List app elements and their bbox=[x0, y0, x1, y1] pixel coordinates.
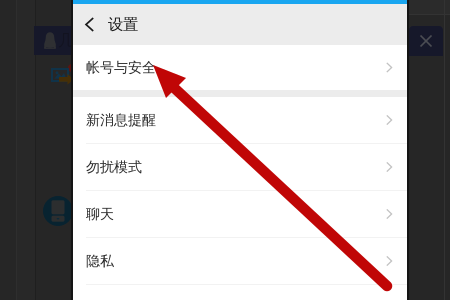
staticText: 隐私 bbox=[86, 252, 114, 270]
button[interactable]: 勿扰模式 bbox=[73, 144, 407, 190]
staticText: 设置 bbox=[108, 15, 138, 34]
button[interactable]: Back bbox=[73, 4, 108, 45]
button[interactable]: 帐号与安全 bbox=[73, 45, 407, 90]
staticText: 聊天 bbox=[86, 205, 114, 223]
button[interactable]: 新消息提醒 bbox=[73, 97, 407, 143]
staticText: 勿扰模式 bbox=[86, 158, 142, 176]
staticText: 帐号与安全 bbox=[86, 59, 156, 76]
button[interactable]: 聊天 bbox=[73, 191, 407, 237]
button[interactable]: 隐私 bbox=[73, 238, 407, 284]
button[interactable]: Close bbox=[409, 26, 443, 56]
staticText: 新消息提醒 bbox=[86, 111, 156, 129]
staticText: 几 bbox=[58, 30, 74, 51]
